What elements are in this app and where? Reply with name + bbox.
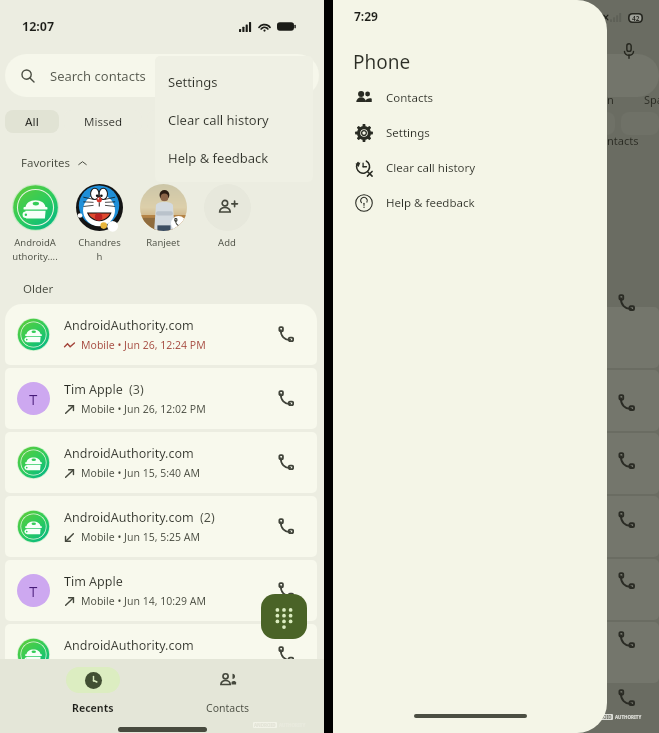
staticText: AndroidAuthority.com — [64, 637, 194, 654]
staticText: Contacts — [167, 114, 215, 130]
staticText: ANDROID — [590, 714, 612, 720]
button[interactable]: Call — [270, 446, 303, 479]
button[interactable]: Chandres h — [67, 184, 131, 262]
staticText: Contacts — [206, 701, 250, 715]
button[interactable]: Call — [270, 318, 303, 351]
button[interactable]: Settings — [333, 115, 607, 150]
staticText: 12:07 — [22, 18, 55, 35]
staticText: Add — [218, 236, 236, 249]
button[interactable]: Add — [195, 184, 259, 249]
staticText: Spam — [260, 114, 291, 130]
button[interactable]: Clear call history — [333, 150, 607, 185]
staticText: Spa — [644, 92, 659, 107]
staticText: Clear call history — [168, 111, 269, 129]
staticText: T — [29, 581, 38, 601]
staticText: Older — [23, 281, 54, 297]
button[interactable]: Call — [270, 510, 303, 543]
button[interactable]: All — [5, 110, 59, 133]
staticText: Ranjeet — [146, 236, 180, 249]
button[interactable]: AndroidAuthority.com — [5, 624, 317, 685]
staticText: Contacts — [386, 90, 434, 106]
staticText: Phone — [353, 49, 411, 75]
button[interactable]: Settings — [155, 63, 313, 101]
staticText: Mobile • Jun 26, 12:24 PM — [81, 338, 206, 352]
button[interactable]: AndroidAuthority.com — [5, 304, 317, 365]
button[interactable]: Search contacts — [5, 54, 319, 97]
staticText: AndroidA uthority.... — [12, 236, 58, 262]
staticText: AUTHORITY — [615, 714, 642, 720]
button[interactable]: Spam — [240, 110, 311, 133]
staticText: Tim Apple — [64, 573, 123, 590]
staticText: AndroidAuthority.com — [64, 445, 194, 462]
staticText: All — [25, 114, 39, 130]
staticText: ntacts — [607, 133, 639, 148]
staticText: Help & feedback — [386, 195, 475, 211]
button[interactable]: Ranjeet — [131, 184, 195, 249]
staticText: 7:29 — [354, 8, 378, 24]
staticText: Settings — [168, 73, 218, 91]
staticText: AndroidAuthority.com — [64, 317, 194, 334]
staticText: Mobile • Jun 15, 5:25 AM — [81, 530, 201, 544]
button[interactable]: Help & feedback — [333, 185, 607, 220]
staticText: Help & feedback — [168, 149, 269, 167]
button[interactable]: Call — [270, 574, 303, 607]
staticText: Mobile • Jun 26, 12:02 PM — [81, 402, 206, 416]
staticText: Clear call history — [386, 160, 476, 176]
staticText: Favorites — [21, 155, 71, 171]
button[interactable]: AndroidAuthority.com — [5, 496, 317, 557]
button[interactable]: T — [5, 368, 317, 429]
staticText: T — [29, 389, 38, 409]
staticText: Search contacts — [50, 67, 146, 85]
button[interactable]: AndroidAuthority.com — [5, 432, 317, 493]
staticText: Mobile • Jun 15, 5:40 AM — [81, 466, 201, 480]
button[interactable]: Recents — [53, 659, 132, 733]
button[interactable]: Clear call history — [155, 101, 313, 139]
staticText: n — [607, 92, 614, 107]
staticText: Mobile • Jun 14, 10:29 AM — [81, 594, 207, 608]
staticText: Missed — [84, 114, 122, 130]
button[interactable]: Contacts — [188, 659, 267, 733]
staticText: AndroidAuthority.com — [64, 509, 194, 526]
button[interactable]: Missed — [64, 110, 142, 133]
button[interactable]: Contacts — [333, 80, 607, 115]
staticText: 42 — [632, 14, 640, 23]
staticText: Tim Apple — [64, 381, 123, 398]
button[interactable]: T — [5, 560, 317, 621]
button[interactable]: AndroidA uthority.... — [3, 184, 67, 262]
button[interactable]: Call — [270, 382, 303, 415]
staticText: (2) — [200, 509, 215, 526]
staticText: Settings — [386, 125, 430, 141]
staticText: ANDROID — [254, 722, 276, 728]
button[interactable]: Contacts — [147, 110, 235, 133]
staticText: Mobile • Jun 14, 5:20 AM — [81, 658, 201, 672]
staticText: (3) — [129, 381, 144, 398]
button[interactable]: Help & feedback — [155, 139, 313, 177]
staticText: Chandres h — [78, 236, 121, 262]
button[interactable]: Dialpad — [261, 594, 307, 639]
button[interactable]: Favorites — [21, 154, 324, 172]
staticText: Recents — [72, 701, 114, 715]
button[interactable]: Call — [270, 638, 303, 671]
